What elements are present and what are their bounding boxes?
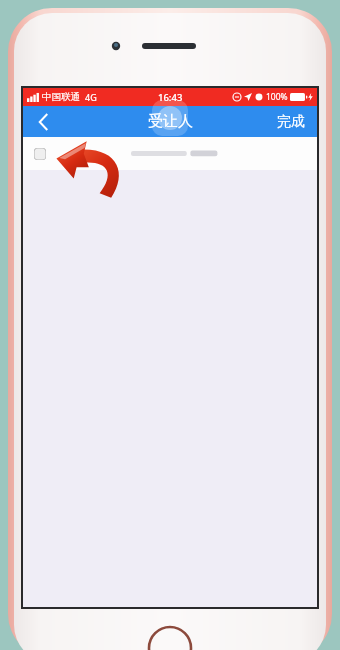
button[interactable]: 完成 [265, 106, 317, 137]
staticText: 100% [266, 91, 288, 103]
staticText: 4G [85, 91, 97, 103]
staticText: 受让人 [148, 112, 193, 131]
button[interactable] [23, 137, 317, 170]
staticText: 16:43 [158, 91, 183, 104]
button[interactable]: Back [23, 106, 63, 137]
staticText: 完成 [277, 113, 305, 131]
staticText: 中国联通 [42, 91, 80, 103]
